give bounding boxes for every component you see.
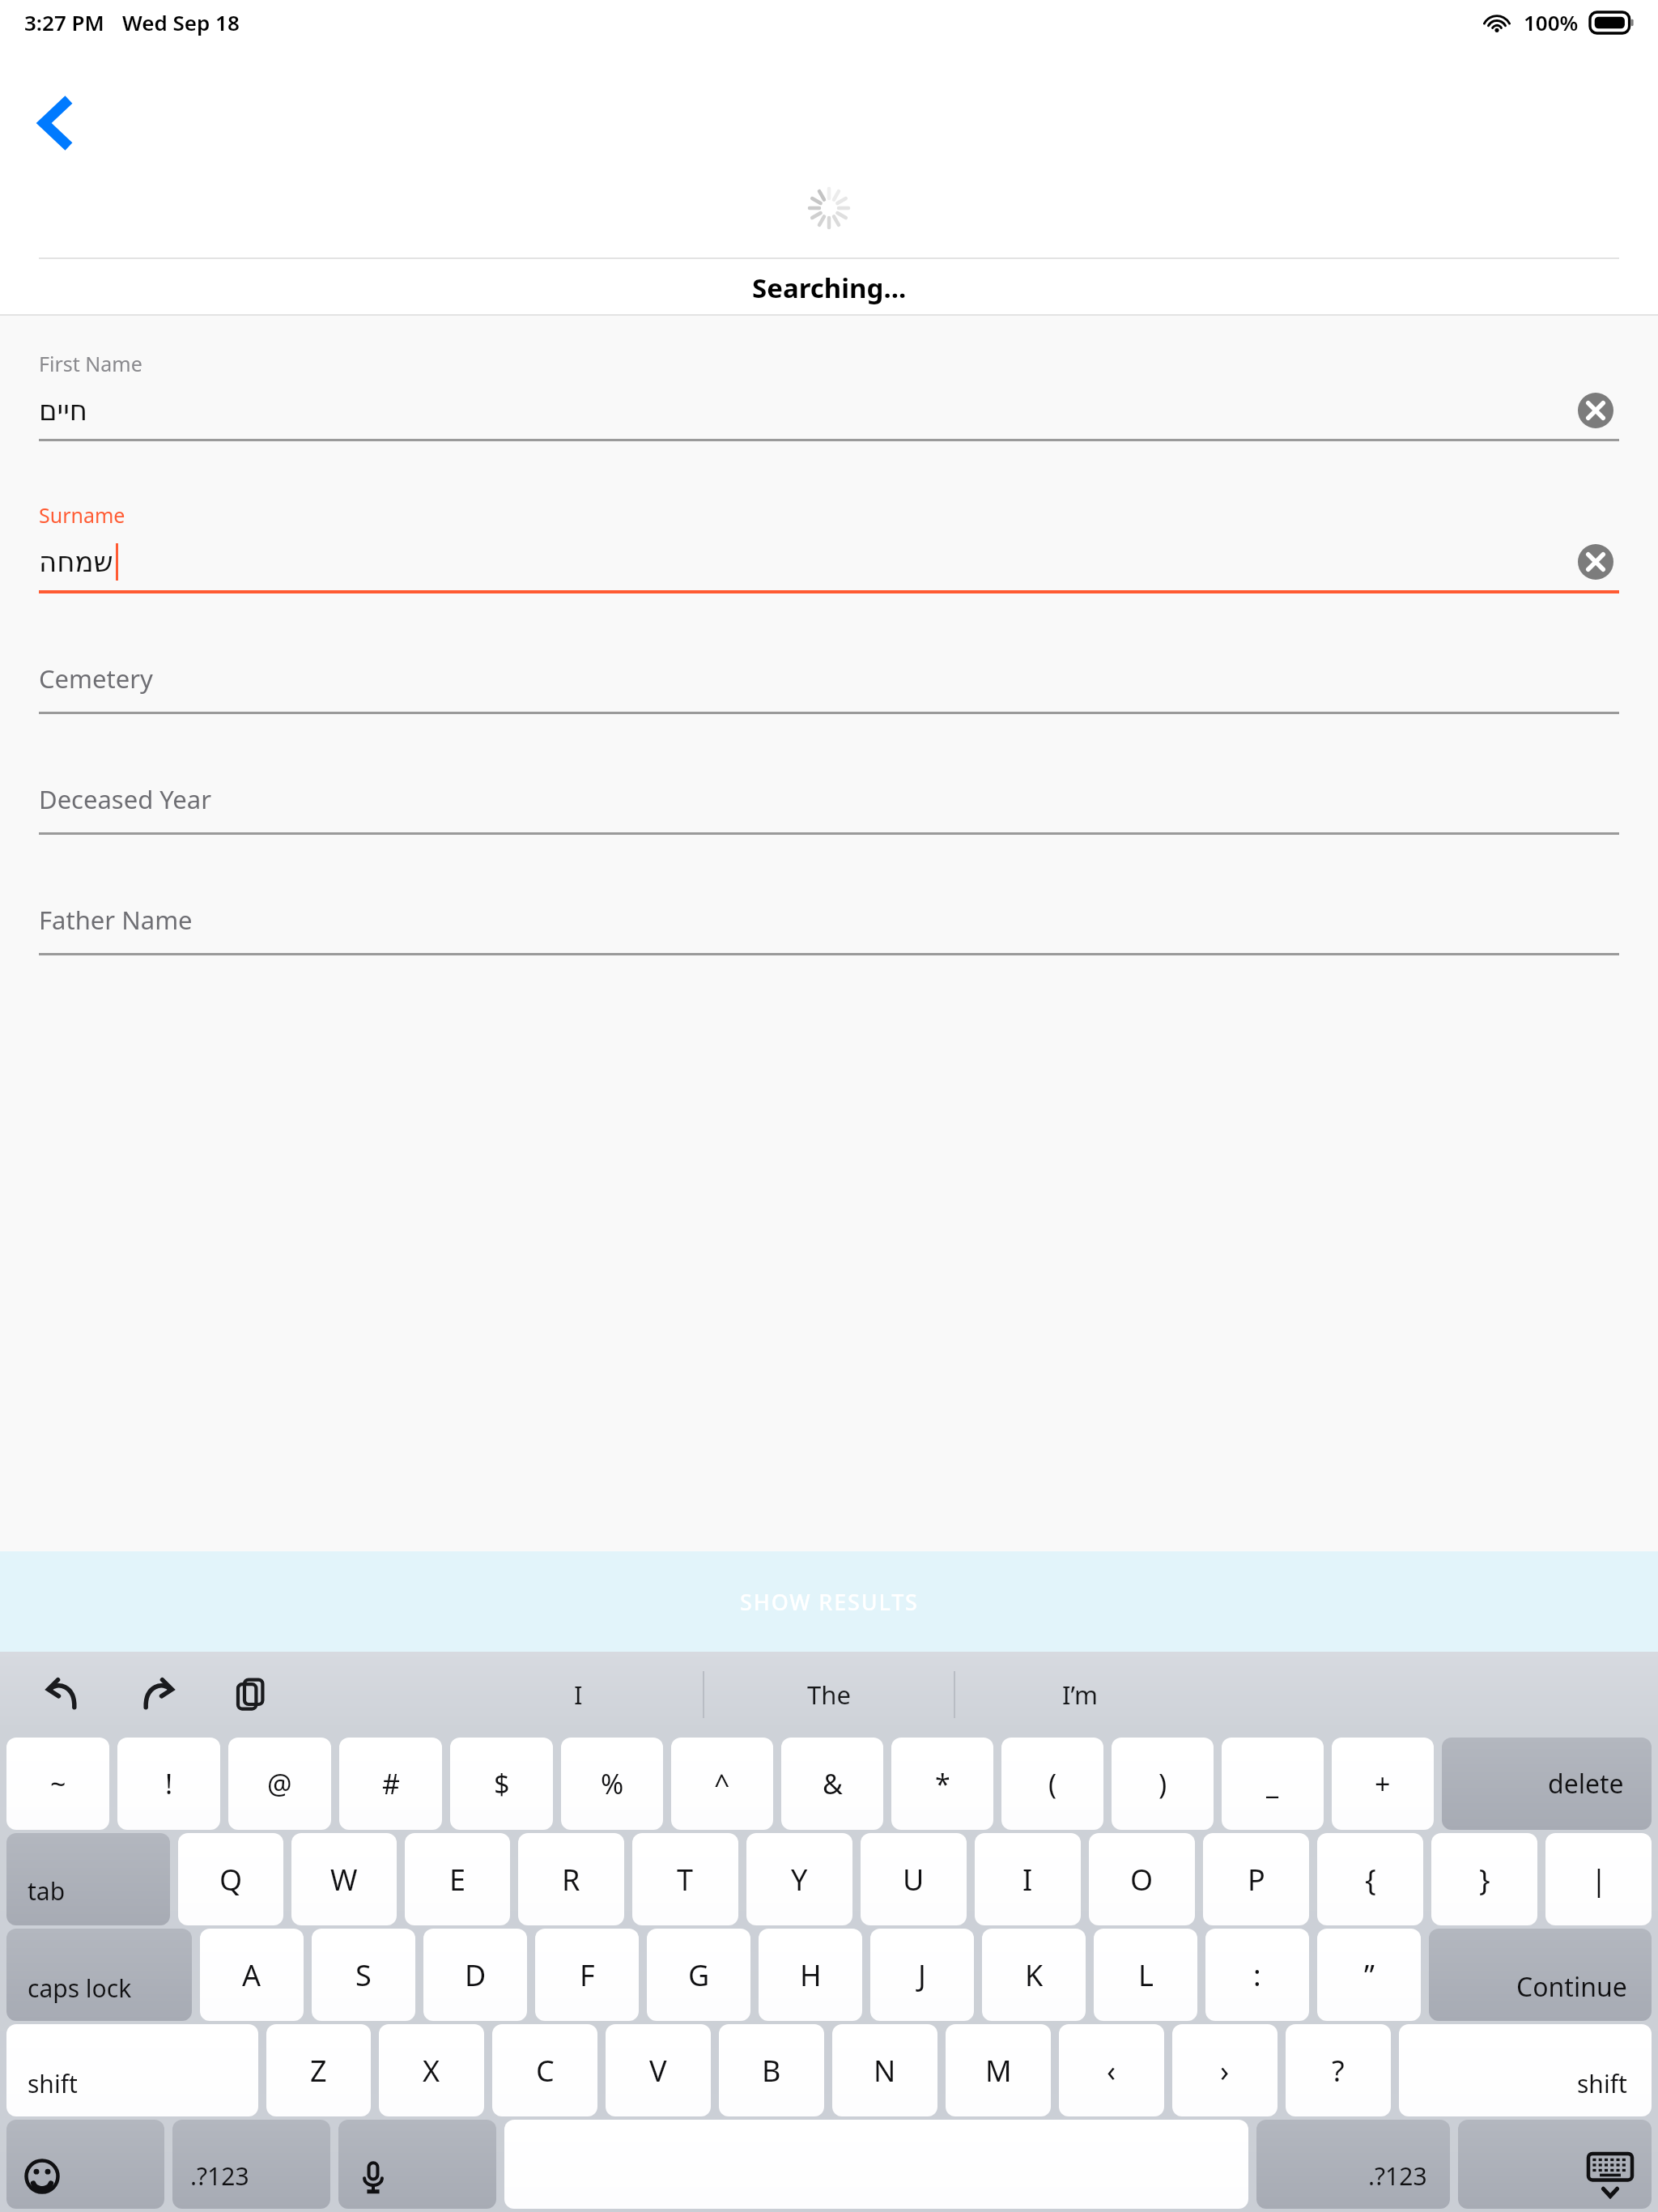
button[interactable]: Paste <box>220 1664 282 1725</box>
button[interactable]: delete <box>1442 1738 1652 1830</box>
button[interactable]: | <box>1545 1833 1652 1925</box>
button[interactable]: K <box>982 1929 1086 2021</box>
button[interactable]: Clear Surname <box>1572 538 1619 585</box>
button[interactable]: shift <box>6 2024 258 2116</box>
button[interactable]: O <box>1089 1833 1195 1925</box>
button[interactable]: U <box>861 1833 967 1925</box>
button[interactable]: F <box>535 1929 639 2021</box>
button[interactable]: & <box>781 1738 883 1830</box>
button[interactable]: Undo <box>32 1664 94 1725</box>
button[interactable]: I <box>975 1833 1081 1925</box>
button[interactable]: # <box>339 1738 442 1830</box>
button[interactable]: Surname <box>39 501 1619 593</box>
button[interactable]: Father Name <box>39 903 1619 955</box>
staticText: › <box>1220 2051 1230 2091</box>
button[interactable]: T <box>632 1833 738 1925</box>
button[interactable]: .?123 <box>172 2120 330 2209</box>
button[interactable]: @ <box>228 1738 331 1830</box>
button[interactable]: J <box>870 1929 974 2021</box>
button[interactable]: Hide keyboard <box>1458 2120 1652 2209</box>
button[interactable]: First Name <box>39 350 1619 441</box>
button[interactable]: I’m <box>955 1652 1205 1738</box>
staticText: + <box>1375 1765 1391 1802</box>
button[interactable]: Clear First Name <box>1572 387 1619 434</box>
button[interactable]: shift <box>1399 2024 1652 2116</box>
button[interactable]: _ <box>1222 1738 1324 1830</box>
button[interactable]: Continue <box>1429 1929 1652 2021</box>
staticText: H <box>800 1955 822 1995</box>
button[interactable]: Emoji <box>6 2120 164 2209</box>
button[interactable]: ! <box>117 1738 220 1830</box>
button[interactable]: R <box>518 1833 624 1925</box>
button[interactable]: E <box>405 1833 510 1925</box>
button[interactable]: : <box>1205 1929 1309 2021</box>
staticText: ) <box>1158 1765 1167 1802</box>
staticText: shift <box>28 2067 78 2100</box>
button[interactable]: › <box>1172 2024 1278 2116</box>
button[interactable]: ‹ <box>1059 2024 1164 2116</box>
button[interactable]: Cemetery <box>39 661 1619 714</box>
button[interactable]: A <box>200 1929 304 2021</box>
staticText: U <box>903 1860 925 1899</box>
staticText: D <box>465 1955 487 1995</box>
button[interactable]: G <box>647 1929 750 2021</box>
staticText: % <box>601 1765 624 1802</box>
button[interactable]: ( <box>1001 1738 1103 1830</box>
staticText: @ <box>267 1765 292 1802</box>
button[interactable]: Back <box>16 83 97 164</box>
button[interactable]: W <box>291 1833 397 1925</box>
button[interactable]: .?123 <box>1256 2120 1450 2209</box>
staticText: E <box>449 1860 466 1899</box>
button[interactable]: B <box>719 2024 824 2116</box>
button[interactable]: ^ <box>671 1738 773 1830</box>
staticText: * <box>935 1765 950 1802</box>
staticText: Q <box>219 1860 243 1899</box>
button[interactable]: * <box>891 1738 993 1830</box>
button[interactable]: I <box>453 1652 703 1738</box>
button[interactable]: + <box>1332 1738 1434 1830</box>
button[interactable]: Q <box>178 1833 283 1925</box>
button[interactable]: tab <box>6 1833 170 1925</box>
button[interactable]: $ <box>450 1738 553 1830</box>
button[interactable]: C <box>492 2024 597 2116</box>
staticText: | <box>1591 1860 1607 1899</box>
staticText: ? <box>1332 2051 1345 2091</box>
button[interactable]: Dictate <box>338 2120 496 2209</box>
button[interactable]: ” <box>1317 1929 1421 2021</box>
button[interactable]: Y <box>746 1833 852 1925</box>
button[interactable]: % <box>561 1738 663 1830</box>
staticText: T <box>677 1860 694 1899</box>
button[interactable]: M <box>946 2024 1051 2116</box>
staticText: tab <box>28 1874 66 1908</box>
button[interactable]: ) <box>1112 1738 1214 1830</box>
staticText: I’m <box>1062 1678 1098 1712</box>
staticText: ! <box>165 1765 173 1802</box>
staticText: Wed Sep 18 <box>122 8 240 36</box>
staticText: delete <box>1548 1766 1624 1802</box>
button[interactable]: Deceased Year <box>39 782 1619 835</box>
button[interactable]: The <box>704 1652 954 1738</box>
button[interactable]: Redo <box>126 1664 188 1725</box>
button[interactable]: S <box>312 1929 415 2021</box>
button[interactable]: Z <box>266 2024 371 2116</box>
button[interactable]: H <box>759 1929 862 2021</box>
staticText: M <box>985 2051 1012 2091</box>
staticText: F <box>580 1955 595 1995</box>
button[interactable]: } <box>1431 1833 1537 1925</box>
button[interactable]: P <box>1203 1833 1309 1925</box>
button[interactable]: N <box>832 2024 937 2116</box>
button[interactable]: X <box>379 2024 484 2116</box>
staticText: W <box>330 1860 358 1899</box>
button[interactable]: caps lock <box>6 1929 192 2021</box>
staticText: A <box>242 1955 261 1995</box>
button[interactable]: V <box>606 2024 711 2116</box>
button[interactable]: D <box>423 1929 527 2021</box>
staticText: R <box>562 1860 580 1899</box>
button[interactable]: { <box>1317 1833 1423 1925</box>
staticText: } <box>1479 1860 1490 1899</box>
button[interactable]: ? <box>1286 2024 1391 2116</box>
button[interactable]: ~ <box>6 1738 109 1830</box>
button[interactable]: L <box>1094 1929 1197 2021</box>
